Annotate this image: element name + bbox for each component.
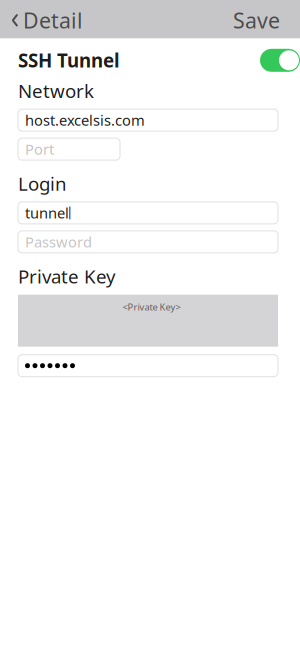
staticText: Login (18, 171, 67, 196)
button[interactable]: Detail (0, 0, 91, 40)
staticText: Network (18, 78, 94, 103)
button[interactable]: Save (221, 0, 292, 40)
staticText: SSH Tunnel (18, 48, 120, 73)
staticText: Detail (23, 6, 83, 34)
staticText: Password (25, 232, 92, 252)
staticText: host.excelsis.com (25, 110, 145, 130)
staticText: Private Key (18, 264, 116, 289)
staticText: tunnel (25, 203, 69, 223)
button[interactable]: SSH Tunnel toggle (260, 49, 300, 72)
staticText: <Private Key> (122, 301, 180, 313)
staticText: Port (25, 139, 54, 159)
staticText: Save (233, 6, 280, 34)
